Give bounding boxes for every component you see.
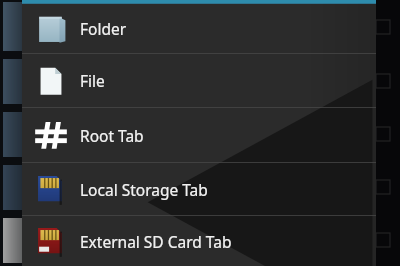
staticText: Folder <box>80 18 127 39</box>
button[interactable]: File <box>22 54 376 107</box>
staticText: Root Tab <box>80 125 144 146</box>
staticText: File <box>80 70 105 91</box>
other: File <box>33 63 69 99</box>
other: Local Storage Tab <box>33 171 69 207</box>
staticText: Local Storage Tab <box>80 179 208 200</box>
button[interactable]: Folder <box>22 4 376 53</box>
button[interactable]: Local Storage Tab <box>22 163 376 215</box>
other: External SD Card Tab <box>33 223 69 259</box>
other: Folder <box>33 11 69 47</box>
staticText: External SD Card Tab <box>80 231 232 252</box>
other: Root Tab <box>33 117 69 153</box>
button[interactable]: Root Tab <box>22 108 376 162</box>
button[interactable]: External SD Card Tab <box>22 216 376 266</box>
